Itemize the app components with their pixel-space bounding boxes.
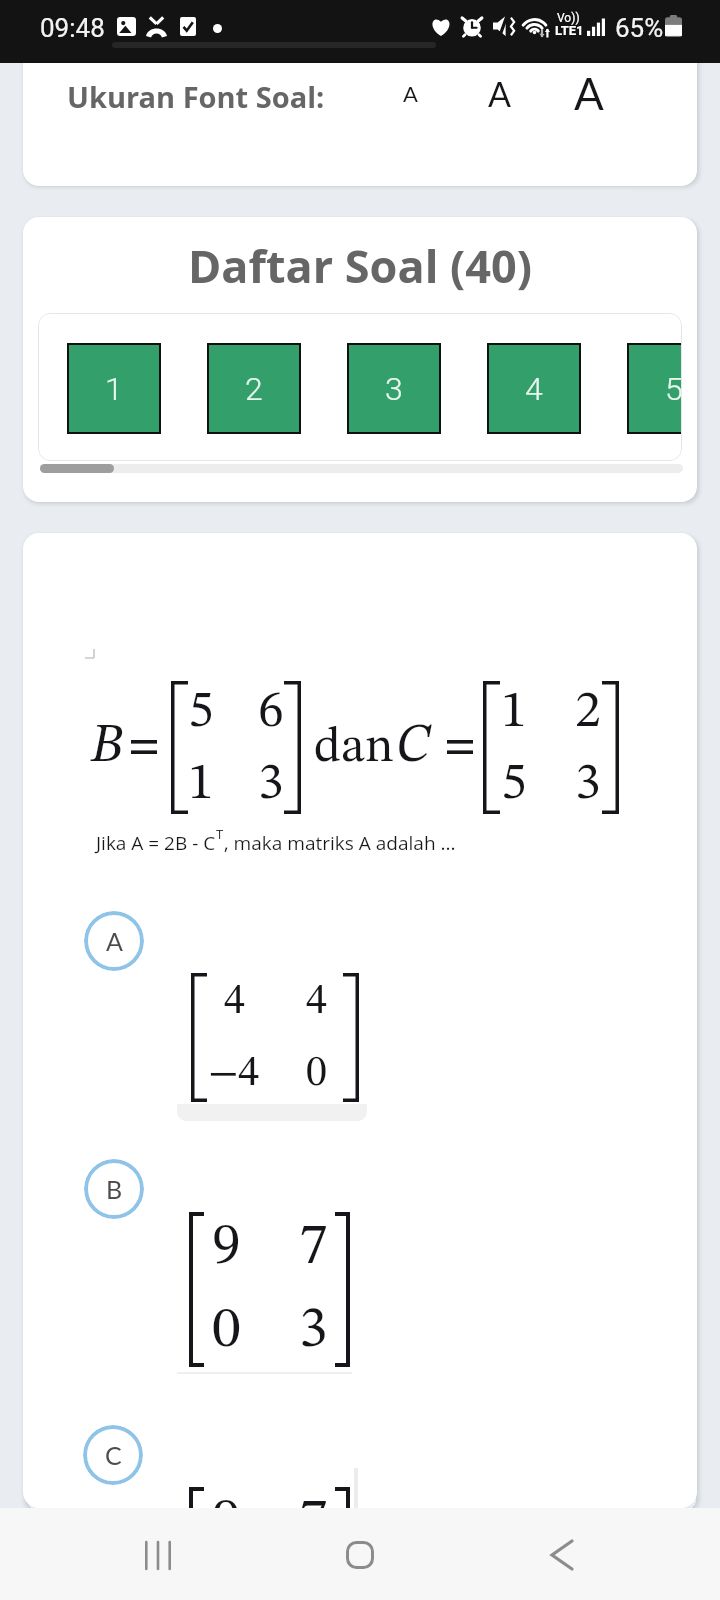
staticText: 1 bbox=[501, 686, 527, 738]
button[interactable]: 2 bbox=[207, 343, 301, 434]
button[interactable]: A bbox=[366, 58, 454, 128]
staticText: 7 bbox=[299, 1494, 328, 1508]
staticText: 3 bbox=[258, 758, 284, 810]
staticText: LTE1 bbox=[555, 23, 584, 38]
staticText: A bbox=[488, 73, 512, 114]
staticText: C bbox=[396, 721, 431, 774]
button[interactable]: A bbox=[84, 911, 144, 971]
staticText: T bbox=[216, 825, 224, 843]
staticText: A bbox=[403, 80, 418, 106]
staticText: Daftar Soal (40) bbox=[23, 235, 697, 296]
button[interactable]: 4 bbox=[487, 343, 581, 434]
staticText: 1 bbox=[188, 758, 214, 810]
button[interactable]: A bbox=[545, 58, 633, 128]
staticText: dan bbox=[314, 723, 394, 773]
staticText: 9 bbox=[212, 1219, 241, 1277]
button[interactable]: C bbox=[83, 1425, 143, 1485]
staticText: 3 bbox=[385, 370, 403, 408]
staticText: 1 bbox=[105, 370, 123, 408]
staticText: 3 bbox=[299, 1302, 328, 1360]
staticText: 9 bbox=[212, 1494, 241, 1508]
staticText: 4 bbox=[224, 981, 245, 1023]
button[interactable]: 5 bbox=[627, 343, 682, 434]
staticText: 5 bbox=[188, 686, 214, 738]
staticText: 5 bbox=[665, 370, 682, 408]
staticText: 5 bbox=[501, 758, 527, 810]
staticText: B bbox=[91, 721, 123, 774]
button[interactable]: A bbox=[456, 58, 544, 128]
staticText: 2 bbox=[245, 370, 263, 408]
staticText: B bbox=[106, 1174, 123, 1204]
staticText: 0 bbox=[212, 1302, 241, 1360]
staticText: 6 bbox=[258, 686, 284, 738]
staticText: 4 bbox=[306, 981, 327, 1023]
button[interactable]: Home bbox=[315, 1520, 404, 1590]
button[interactable]: Recent apps bbox=[113, 1520, 202, 1590]
button[interactable]: 1 bbox=[67, 343, 161, 434]
staticText: 0 bbox=[306, 1053, 327, 1095]
staticText: 4 bbox=[525, 370, 543, 408]
staticText: 09:48 bbox=[40, 13, 105, 43]
staticText: 3 bbox=[575, 758, 601, 810]
staticText: A bbox=[574, 67, 604, 120]
staticText: C bbox=[105, 1440, 122, 1470]
staticText: 65% bbox=[615, 13, 664, 43]
staticText: Vo)) bbox=[557, 11, 580, 25]
staticText: 2 bbox=[575, 686, 601, 738]
staticText: , maka matriks A adalah ... bbox=[224, 830, 456, 856]
button[interactable]: Back bbox=[517, 1520, 606, 1590]
staticText: Ukuran Font Soal: bbox=[67, 77, 325, 116]
staticText: −4 bbox=[208, 1053, 260, 1095]
button[interactable]: 3 bbox=[347, 343, 441, 434]
staticText: 7 bbox=[299, 1219, 328, 1277]
staticText: Jika A = 2B - C bbox=[96, 830, 216, 856]
button[interactable]: B bbox=[84, 1159, 144, 1219]
staticText: A bbox=[106, 926, 123, 956]
